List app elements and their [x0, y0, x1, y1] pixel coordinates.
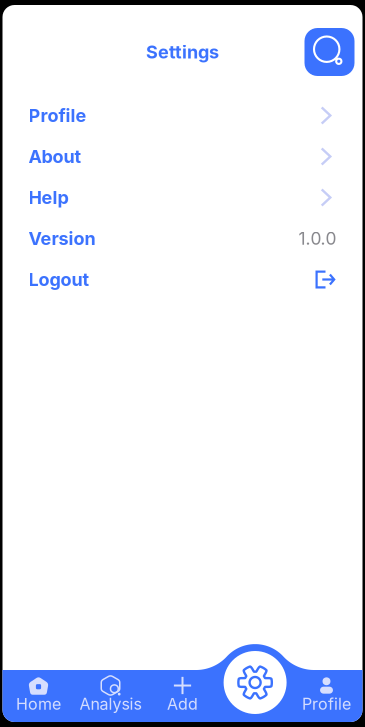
staticText: Profile [28, 105, 86, 126]
staticText: Analysis [79, 694, 141, 714]
button[interactable]: Add [146, 676, 218, 720]
staticText: Home [16, 694, 61, 714]
staticText: Version [28, 228, 95, 249]
button[interactable]: Profile [290, 676, 362, 720]
staticText: Help [28, 187, 68, 208]
button[interactable]: Help [2, 177, 362, 218]
staticText: Logout [28, 269, 89, 290]
staticText: Add [167, 694, 198, 714]
staticText: About [28, 146, 81, 167]
button[interactable]: Logout [2, 259, 362, 300]
button[interactable]: Settings [224, 651, 287, 714]
button[interactable]: About [2, 136, 362, 177]
button[interactable]: Home [2, 676, 74, 720]
button[interactable]: Search [304, 28, 354, 76]
staticText: Settings [146, 41, 219, 63]
staticText: Profile [302, 694, 351, 714]
button[interactable]: Profile [2, 95, 362, 136]
button[interactable]: Version [2, 218, 362, 259]
button[interactable]: Analysis [74, 676, 146, 720]
staticText: 1.0.0 [298, 228, 336, 249]
